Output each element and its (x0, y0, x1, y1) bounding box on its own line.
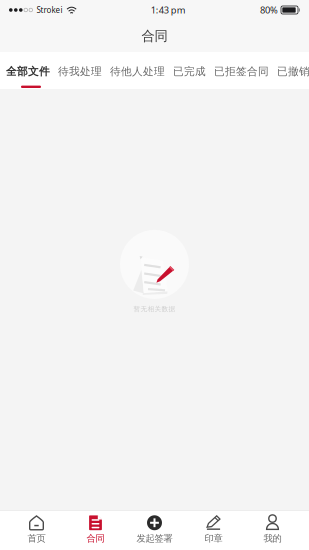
staticText: 合同 (141, 28, 167, 44)
staticText: Strokei (37, 5, 63, 15)
staticText: 待他人处理 (110, 65, 165, 78)
button[interactable]: 待他人处理 (110, 52, 165, 89)
button[interactable]: 全部文件 (6, 52, 50, 89)
staticText: 首页 (27, 533, 45, 544)
button[interactable]: 已撤销 (277, 52, 309, 89)
button[interactable]: 待我处理 (58, 52, 102, 89)
staticText: 1:43 pm (151, 4, 186, 16)
button[interactable]: 我的 (243, 511, 302, 549)
button[interactable]: 合同 (66, 511, 125, 549)
staticText: 全部文件 (6, 65, 50, 78)
staticText: 已拒签合同 (214, 65, 269, 78)
staticText: 发起签署 (136, 533, 172, 544)
staticText: 待我处理 (58, 65, 102, 78)
staticText: 80% (260, 4, 278, 16)
button[interactable]: 已完成 (173, 52, 206, 89)
staticText: 已撤销 (277, 65, 309, 78)
button[interactable]: 印章 (184, 511, 243, 549)
staticText: 印章 (204, 533, 222, 544)
button[interactable]: 首页 (7, 511, 66, 549)
staticText: 暂无相关数据 (133, 305, 175, 313)
button[interactable]: 已拒签合同 (214, 52, 269, 89)
staticText: 我的 (263, 533, 281, 544)
button[interactable]: 发起签署 (125, 511, 184, 549)
staticText: 已完成 (173, 65, 206, 78)
staticText: 合同 (86, 533, 104, 544)
